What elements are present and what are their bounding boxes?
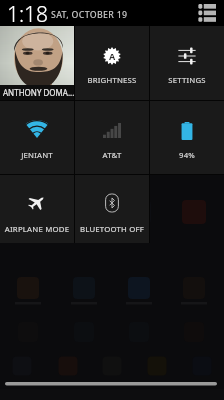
button[interactable]: BLUETOOTH OFF xyxy=(75,175,149,243)
staticText: JENIANT xyxy=(0,150,74,161)
staticText: A xyxy=(109,50,116,62)
staticText: 1:18 xyxy=(7,0,49,26)
staticText: BRIGHTNESS xyxy=(75,75,149,86)
button[interactable]: ANTHONY DOMA... xyxy=(0,26,74,100)
staticText: AT&T xyxy=(75,150,149,161)
button[interactable]: SETTINGS xyxy=(150,26,224,100)
button[interactable]: Notifications xyxy=(195,1,219,25)
staticText: SAT, OCTOBER 19 xyxy=(51,9,128,21)
staticText: BLUETOOTH OFF xyxy=(75,224,149,235)
staticText: ANTHONY DOMA... xyxy=(3,87,74,98)
button[interactable]: AT&T xyxy=(75,101,149,174)
button[interactable]: 94% xyxy=(150,101,224,174)
staticText: AIRPLANE MODE xyxy=(0,224,74,235)
button[interactable]: A xyxy=(75,26,149,100)
button[interactable]: JENIANT xyxy=(0,101,74,174)
button[interactable]: AIRPLANE MODE xyxy=(0,175,74,243)
staticText: SETTINGS xyxy=(150,75,224,86)
staticText: 94% xyxy=(150,150,224,161)
